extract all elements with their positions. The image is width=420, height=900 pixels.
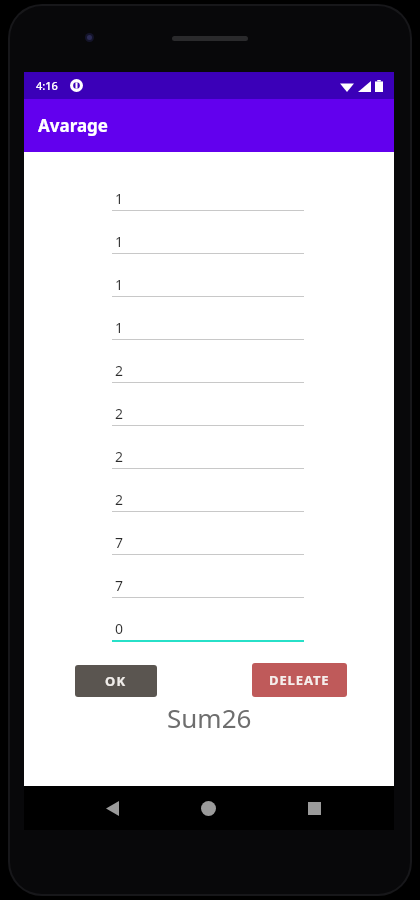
button[interactable]: 7	[112, 520, 304, 563]
button[interactable]: 1	[112, 305, 304, 348]
button[interactable]: 2	[112, 391, 304, 434]
button[interactable]: 1	[112, 262, 304, 305]
staticText: 1	[115, 232, 124, 251]
button[interactable]: DELEATE	[252, 663, 347, 697]
staticText: Sum26	[167, 700, 252, 735]
button[interactable]: 2	[112, 348, 304, 391]
button[interactable]: 1	[112, 176, 304, 219]
staticText: 2	[115, 404, 124, 423]
staticText: 4:16	[36, 78, 58, 93]
staticText: 7	[115, 533, 124, 552]
staticText: 2	[115, 490, 124, 509]
staticText: 7	[115, 576, 124, 595]
button[interactable]: 0	[112, 606, 304, 649]
button[interactable]: OK	[75, 665, 157, 697]
staticText: OK	[105, 672, 127, 690]
button[interactable]: Back	[86, 786, 138, 830]
staticText: 1	[115, 275, 124, 294]
staticText: 1	[115, 318, 124, 337]
button[interactable]: 7	[112, 563, 304, 606]
staticText: 2	[115, 447, 124, 466]
button[interactable]: 2	[112, 434, 304, 477]
staticText: 0	[115, 619, 124, 638]
staticText: 2	[115, 361, 124, 380]
button[interactable]: Home	[182, 786, 234, 830]
staticText: DELEATE	[269, 671, 330, 689]
button[interactable]: 1	[112, 219, 304, 262]
button[interactable]: 2	[112, 477, 304, 520]
staticText: 1	[115, 189, 124, 208]
staticText: Avarage	[38, 114, 108, 137]
button[interactable]: Recents	[288, 786, 340, 830]
